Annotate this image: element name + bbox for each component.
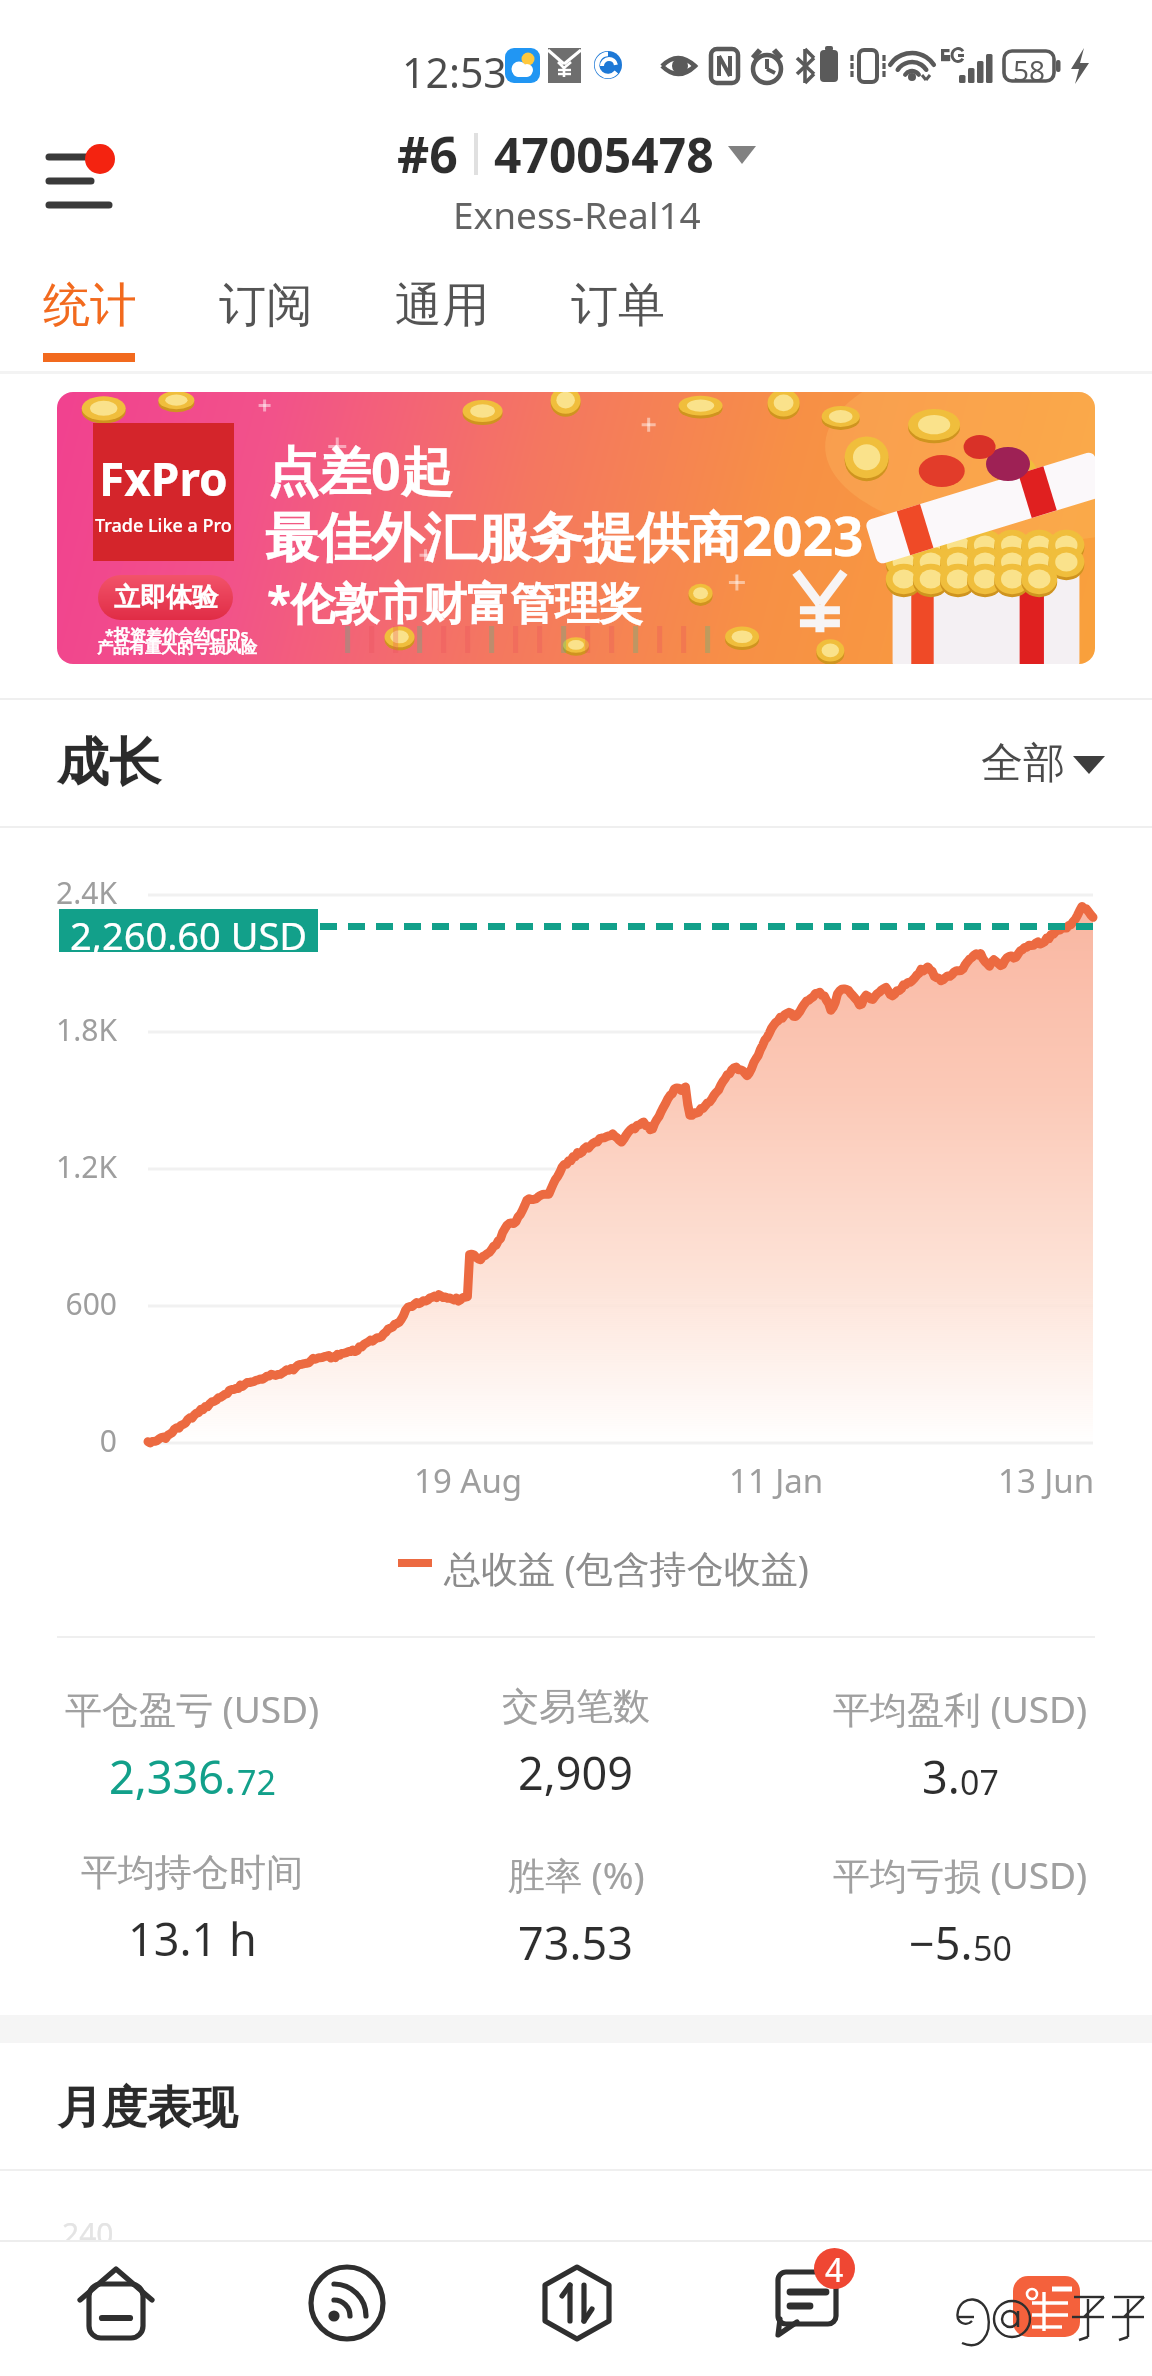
staticText: 73.53 [518,1912,634,1973]
staticText: 13 Jun [998,1458,1095,1503]
staticText: 交易笔数 [502,1683,650,1730]
button[interactable]: 全部 [981,737,1105,790]
staticText: 2,260.60 USD [70,909,308,952]
staticText: 2.4K [0,872,117,913]
staticText: Exness-Real14 [453,189,701,239]
staticText: 50 [973,1925,1012,1971]
staticText: *投资差价合约CFDs [105,624,249,646]
staticText: 最佳外汇服务提供商2023 [265,499,864,571]
staticText: #6 [397,120,458,188]
staticText: Trade Like a Pro [95,513,232,538]
staticText: 12:53 [402,44,507,100]
staticText: 72 [237,1759,276,1805]
staticText: 1.8K [0,1009,117,1050]
staticText: 点差0起 [267,434,453,505]
staticText: 平均亏损 (USD) [833,1849,1088,1900]
button[interactable]: Home [0,2240,231,2376]
staticText: 13.1 h [128,1908,257,1969]
button[interactable]: Menu [12,120,142,250]
staticText: 统计 [43,276,135,335]
staticText: 平均盈利 (USD) [833,1683,1088,1734]
staticText: 订单 [571,276,663,335]
staticText: 产品有重大的亏损风险 [97,638,257,658]
button[interactable]: FxPro [57,392,1095,664]
staticText: FxPro [99,447,228,510]
staticText: 订阅 [219,276,311,335]
staticText: 全部 [981,737,1065,790]
staticText: 1.2K [0,1146,117,1187]
staticText: 58 [1013,51,1046,89]
staticText: 通用 [395,276,487,335]
staticText: 240 [62,2213,114,2254]
staticText: 胜率 (%) [508,1849,645,1900]
staticText: 19 Aug [414,1458,523,1503]
button[interactable]: Trade [462,2240,692,2376]
staticText: 11 Jan [729,1458,824,1503]
staticText: 07 [960,1759,999,1805]
staticText: 立即体验 [114,581,218,614]
button[interactable]: Signals [231,2240,462,2376]
button[interactable]: 统计 [43,260,135,374]
button[interactable]: 通用 [395,260,487,374]
staticText: 2,336. [109,1746,237,1807]
staticText: −5. [909,1912,973,1973]
button[interactable]: 订阅 [219,260,311,374]
staticText: 总收益 (包含持仓收益) [444,1542,809,1593]
button[interactable]: 订单 [571,260,663,374]
staticText: 2,909 [518,1742,634,1803]
staticText: 月度表现 [57,2080,237,2137]
staticText: 0 [0,1420,117,1461]
staticText: 平仓盈亏 (USD) [65,1683,320,1734]
staticText: 600 [0,1283,117,1324]
staticText: 4 [825,2248,844,2289]
staticText: 成长 [57,730,161,796]
staticText: *伦敦市财富管理奖 [267,572,643,632]
staticText: 平均持仓时间 [81,1849,303,1896]
button[interactable]: Messages [692,2240,922,2376]
staticText: 3. [922,1746,960,1807]
staticText: 47005478 [494,122,714,187]
